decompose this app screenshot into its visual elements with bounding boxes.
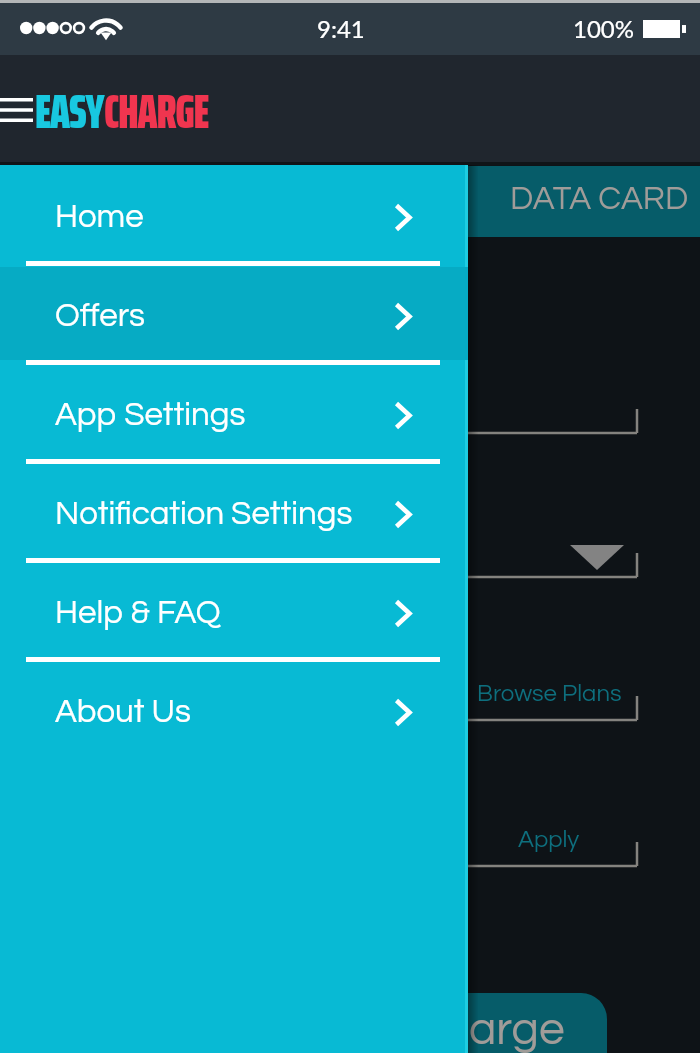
button[interactable]: Open navigation menu xyxy=(0,98,33,122)
button[interactable]: Recharge xyxy=(319,993,607,1053)
button[interactable]: Help & FAQ xyxy=(0,561,468,660)
button[interactable]: DATA CARD xyxy=(0,166,700,237)
staticText: Offers xyxy=(55,299,146,333)
staticText: DATA CARD xyxy=(510,182,689,216)
staticText: Notification Settings xyxy=(55,497,353,531)
staticText: App Settings xyxy=(55,398,246,432)
staticText: Apply xyxy=(518,827,580,852)
staticText: Recharge xyxy=(362,1006,565,1053)
staticText: CHARGE xyxy=(104,74,209,150)
staticText: 100% xyxy=(573,14,634,43)
button[interactable]: Home xyxy=(0,165,468,264)
button[interactable]: About Us xyxy=(0,660,468,759)
staticText: Help & FAQ xyxy=(55,596,221,630)
staticText: Browse Plans xyxy=(477,681,622,706)
staticText: Home xyxy=(55,200,144,234)
button[interactable]: App Settings xyxy=(0,363,468,462)
button[interactable]: Offers xyxy=(0,264,468,363)
button[interactable]: Notification Settings xyxy=(0,462,468,561)
staticText: 9:41 xyxy=(317,14,365,43)
staticText: About Us xyxy=(55,695,191,729)
staticText: EASY xyxy=(35,74,104,150)
